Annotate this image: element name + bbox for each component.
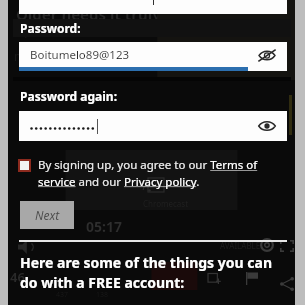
staticText: Boitumelo89@123 bbox=[30, 47, 130, 63]
button[interactable]: Next bbox=[20, 201, 74, 229]
staticText: By signing up, you agree to our Terms of… bbox=[38, 157, 283, 189]
button[interactable]: Show password bbox=[19, 111, 287, 141]
button[interactable]: Boitumelo89@123 bbox=[19, 42, 287, 67]
button[interactable]: Hide password bbox=[256, 44, 278, 66]
staticText: 46 bbox=[10, 268, 25, 286]
staticText: Older needs it truly deep bbox=[16, 4, 202, 24]
staticText: Next bbox=[35, 207, 60, 223]
staticText: Here are some of the things you can do w… bbox=[20, 253, 272, 293]
staticText: m bbox=[14, 48, 26, 64]
staticText: Password: bbox=[20, 20, 81, 36]
staticText: Vip bbox=[14, 22, 32, 38]
button[interactable]: By signing up, you agree to our Terms of… bbox=[18, 157, 283, 189]
staticText: AVAILABLE bbox=[220, 240, 261, 251]
staticText: Password again: bbox=[20, 88, 118, 104]
button[interactable]: Show password bbox=[256, 115, 278, 137]
staticText: 05:17 bbox=[86, 217, 122, 236]
staticText: liena1989 bbox=[50, 22, 105, 38]
staticText: Chromecast bbox=[143, 198, 189, 209]
